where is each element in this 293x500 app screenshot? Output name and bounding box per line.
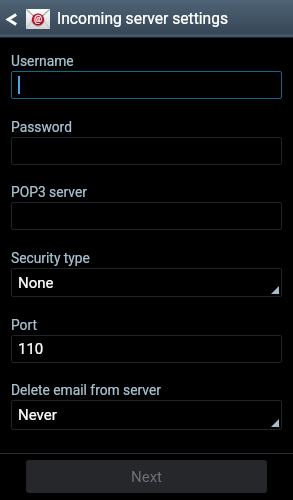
staticText: Delete email from server — [11, 382, 161, 398]
staticText: @ — [34, 14, 43, 25]
staticText: Username — [11, 53, 74, 69]
staticText: 110 — [18, 340, 44, 358]
staticText: Incoming server settings — [57, 10, 228, 28]
button[interactable] — [11, 71, 282, 99]
staticText: None — [18, 274, 54, 292]
staticText: Never — [18, 406, 57, 424]
button[interactable] — [11, 137, 282, 165]
button[interactable]: Next — [26, 460, 267, 493]
button[interactable]: Back — [0, 0, 23, 38]
button[interactable]: 110 — [11, 335, 282, 363]
staticText: Port — [11, 317, 38, 333]
staticText: POP3 server — [11, 184, 87, 200]
button[interactable]: None — [11, 268, 282, 297]
button[interactable]: Never — [11, 400, 282, 430]
staticText: Security type — [11, 250, 90, 266]
staticText: Password — [11, 119, 72, 135]
button[interactable] — [11, 202, 282, 230]
staticText: Next — [131, 468, 163, 486]
